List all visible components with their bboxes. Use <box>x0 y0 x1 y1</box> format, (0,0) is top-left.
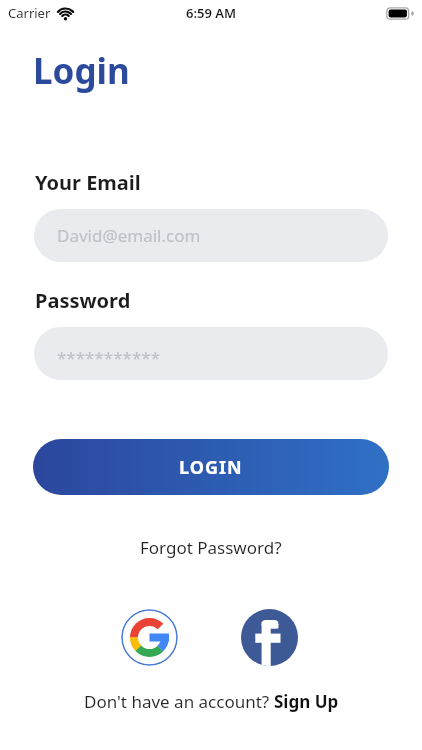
staticText: Your Email <box>35 169 141 196</box>
button[interactable]: David@email.com <box>34 209 388 262</box>
button[interactable]: *********** <box>34 327 388 380</box>
staticText: Password <box>35 287 131 314</box>
button[interactable]: LOGIN <box>33 439 389 495</box>
staticText: LOGIN <box>179 455 243 480</box>
staticText: David@email.com <box>57 224 201 247</box>
staticText: Login <box>33 47 130 95</box>
staticText: Carrier <box>8 4 51 22</box>
staticText: Forgot Password? <box>140 536 282 559</box>
button[interactable]: Sign Up <box>274 690 339 713</box>
staticText: *********** <box>57 346 161 369</box>
button[interactable] <box>241 609 298 666</box>
button[interactable]: Forgot Password? <box>140 536 282 559</box>
staticText: Sign Up <box>274 690 339 713</box>
staticText: 6:59 AM <box>186 4 237 22</box>
button[interactable] <box>121 609 178 666</box>
staticText: Don't have an account? <box>84 690 274 713</box>
